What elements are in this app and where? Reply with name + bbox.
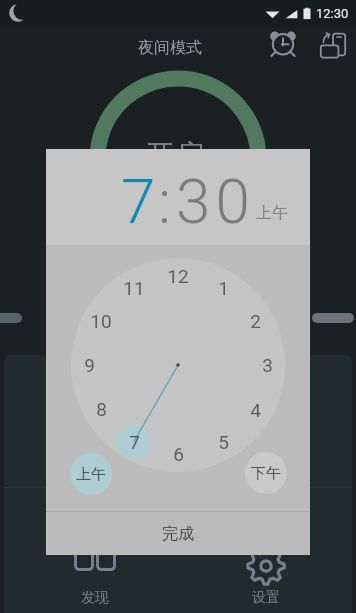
button[interactable]: 10 [86, 309, 116, 333]
staticText: 2 [250, 310, 261, 332]
staticText: 上午 [76, 465, 106, 484]
staticText: 8 [96, 398, 107, 420]
button[interactable]: 5 [208, 430, 238, 454]
staticText: 开启 [145, 137, 205, 175]
staticText: 完成 [162, 524, 194, 544]
staticText: 6 [173, 443, 184, 465]
button[interactable]: 1 [208, 276, 238, 300]
button[interactable]: 3 [252, 353, 282, 377]
button[interactable]: 完成 [46, 512, 310, 555]
staticText: 下午 [251, 464, 281, 483]
button[interactable]: Next [312, 313, 354, 323]
button[interactable]: 下午 [245, 452, 287, 494]
staticText: 1 [218, 277, 229, 299]
button[interactable]: Alarm [262, 22, 303, 63]
button[interactable]: 设置 [206, 545, 326, 611]
button[interactable]: 12 [163, 264, 193, 288]
staticText: 11 [123, 277, 145, 299]
staticText: 5 [218, 431, 229, 453]
button[interactable]: 6 [163, 442, 193, 466]
staticText: 夜间模式 [138, 38, 202, 58]
staticText: 7 [129, 431, 140, 453]
button[interactable]: 2 [240, 309, 270, 333]
button[interactable]: Previous [0, 313, 22, 323]
staticText: 9 [84, 354, 95, 376]
staticText: 发现 [81, 589, 109, 607]
staticText: 设置 [252, 589, 280, 607]
button[interactable]: :30 [158, 165, 255, 238]
button[interactable]: 4 [240, 398, 270, 422]
staticText: 4 [250, 399, 261, 421]
staticText: 上午 [256, 203, 288, 223]
staticText: 10 [90, 310, 112, 332]
button[interactable]: 7 [121, 165, 161, 238]
staticText: 3 [262, 354, 273, 376]
staticText: 12 [167, 265, 189, 287]
button[interactable]: 11 [119, 276, 149, 300]
button[interactable]: 9 [74, 353, 104, 377]
button[interactable]: 上午 [70, 453, 112, 495]
button[interactable]: 7 [119, 430, 149, 454]
staticText: 12:30 [316, 6, 349, 21]
button[interactable]: 8 [86, 397, 116, 421]
button[interactable]: Cast to device [312, 24, 353, 65]
button[interactable]: 发现 [35, 545, 155, 611]
